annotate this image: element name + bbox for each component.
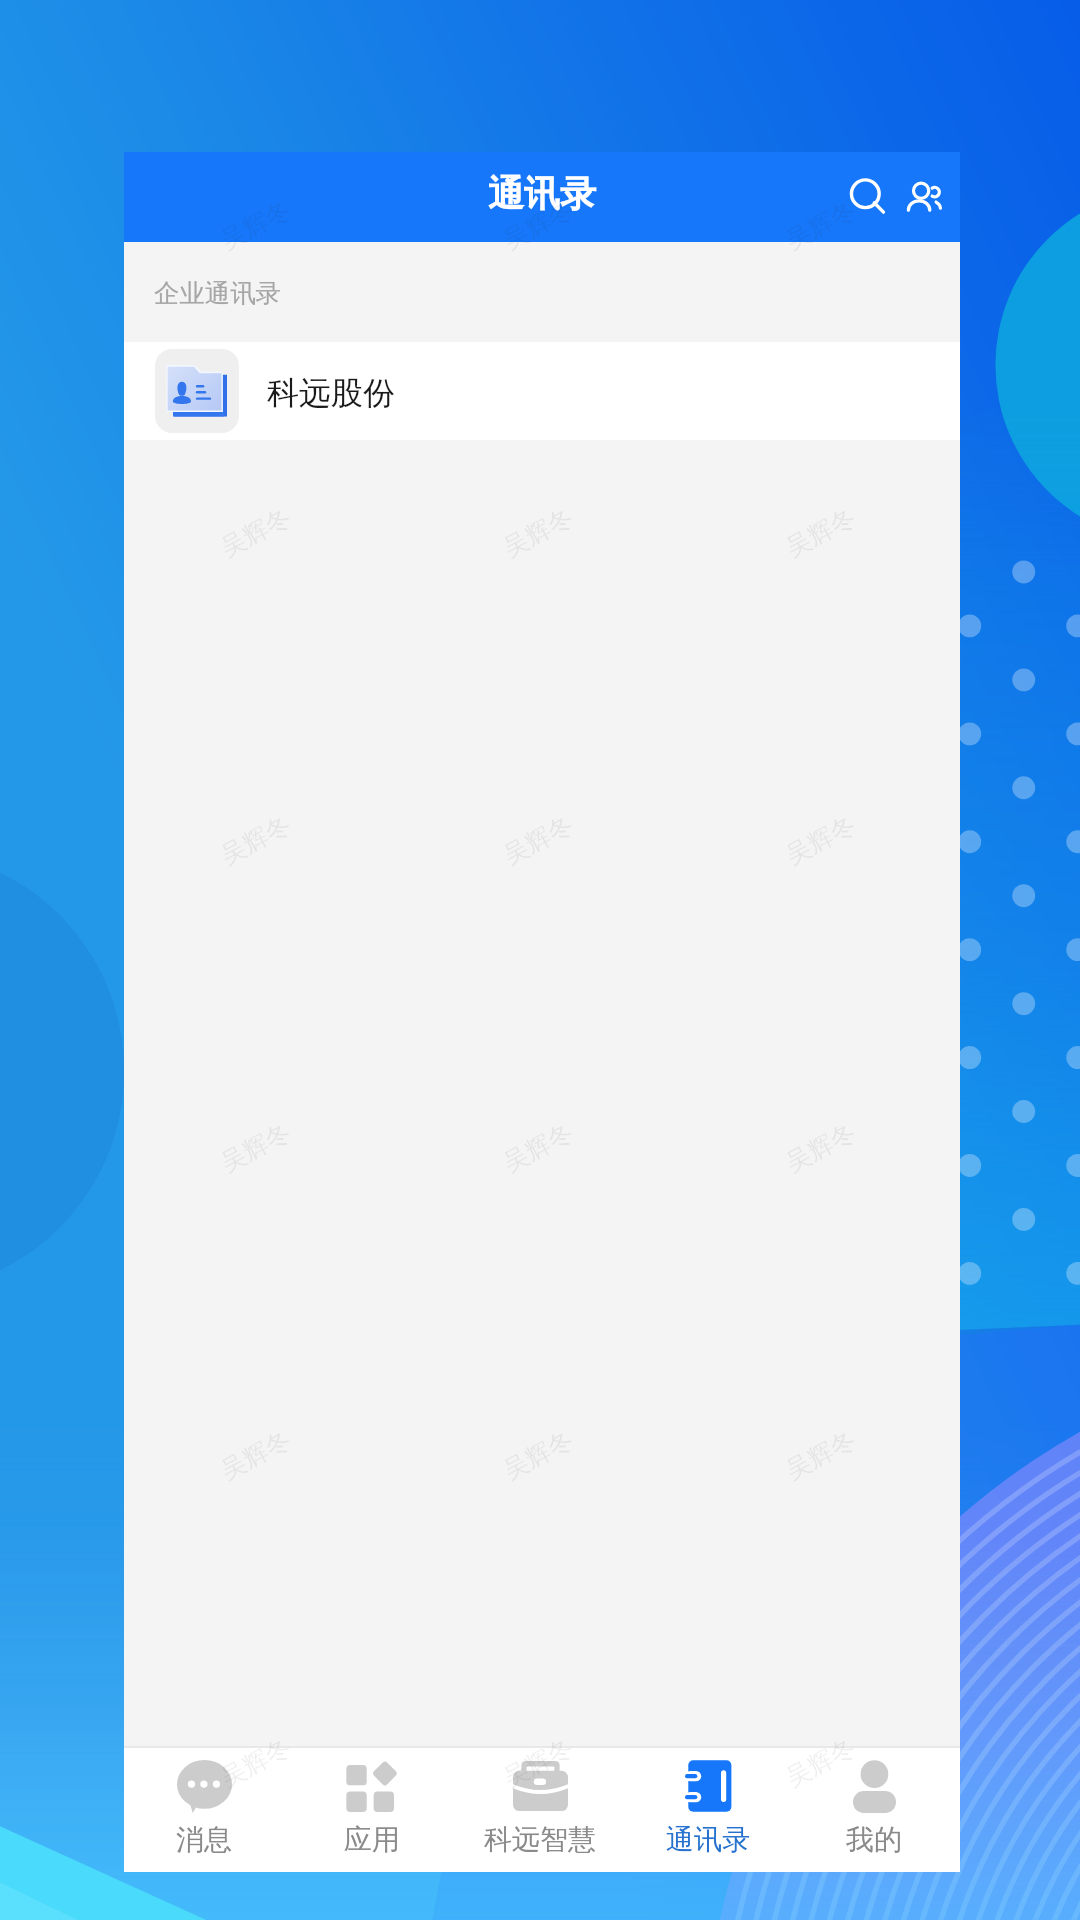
staticText: 企业通讯录 <box>154 278 281 310</box>
staticText: 我的 <box>846 1822 902 1857</box>
staticText: 应用 <box>344 1822 400 1857</box>
button[interactable]: Search <box>839 157 896 237</box>
button[interactable]: 消息 <box>120 1748 288 1872</box>
button[interactable]: 通讯录 <box>624 1748 792 1872</box>
button[interactable]: 科远智慧 <box>456 1748 624 1872</box>
staticText: 通讯录 <box>666 1822 750 1857</box>
staticText: 科远股份 <box>267 373 395 413</box>
button[interactable]: 科远股份 <box>124 342 960 440</box>
button[interactable]: 应用 <box>288 1748 456 1872</box>
staticText: 科远智慧 <box>484 1822 596 1857</box>
button[interactable]: Contacts <box>896 157 953 237</box>
staticText: 通讯录 <box>488 171 596 216</box>
button[interactable]: 我的 <box>792 1748 956 1872</box>
staticText: 消息 <box>176 1822 232 1857</box>
